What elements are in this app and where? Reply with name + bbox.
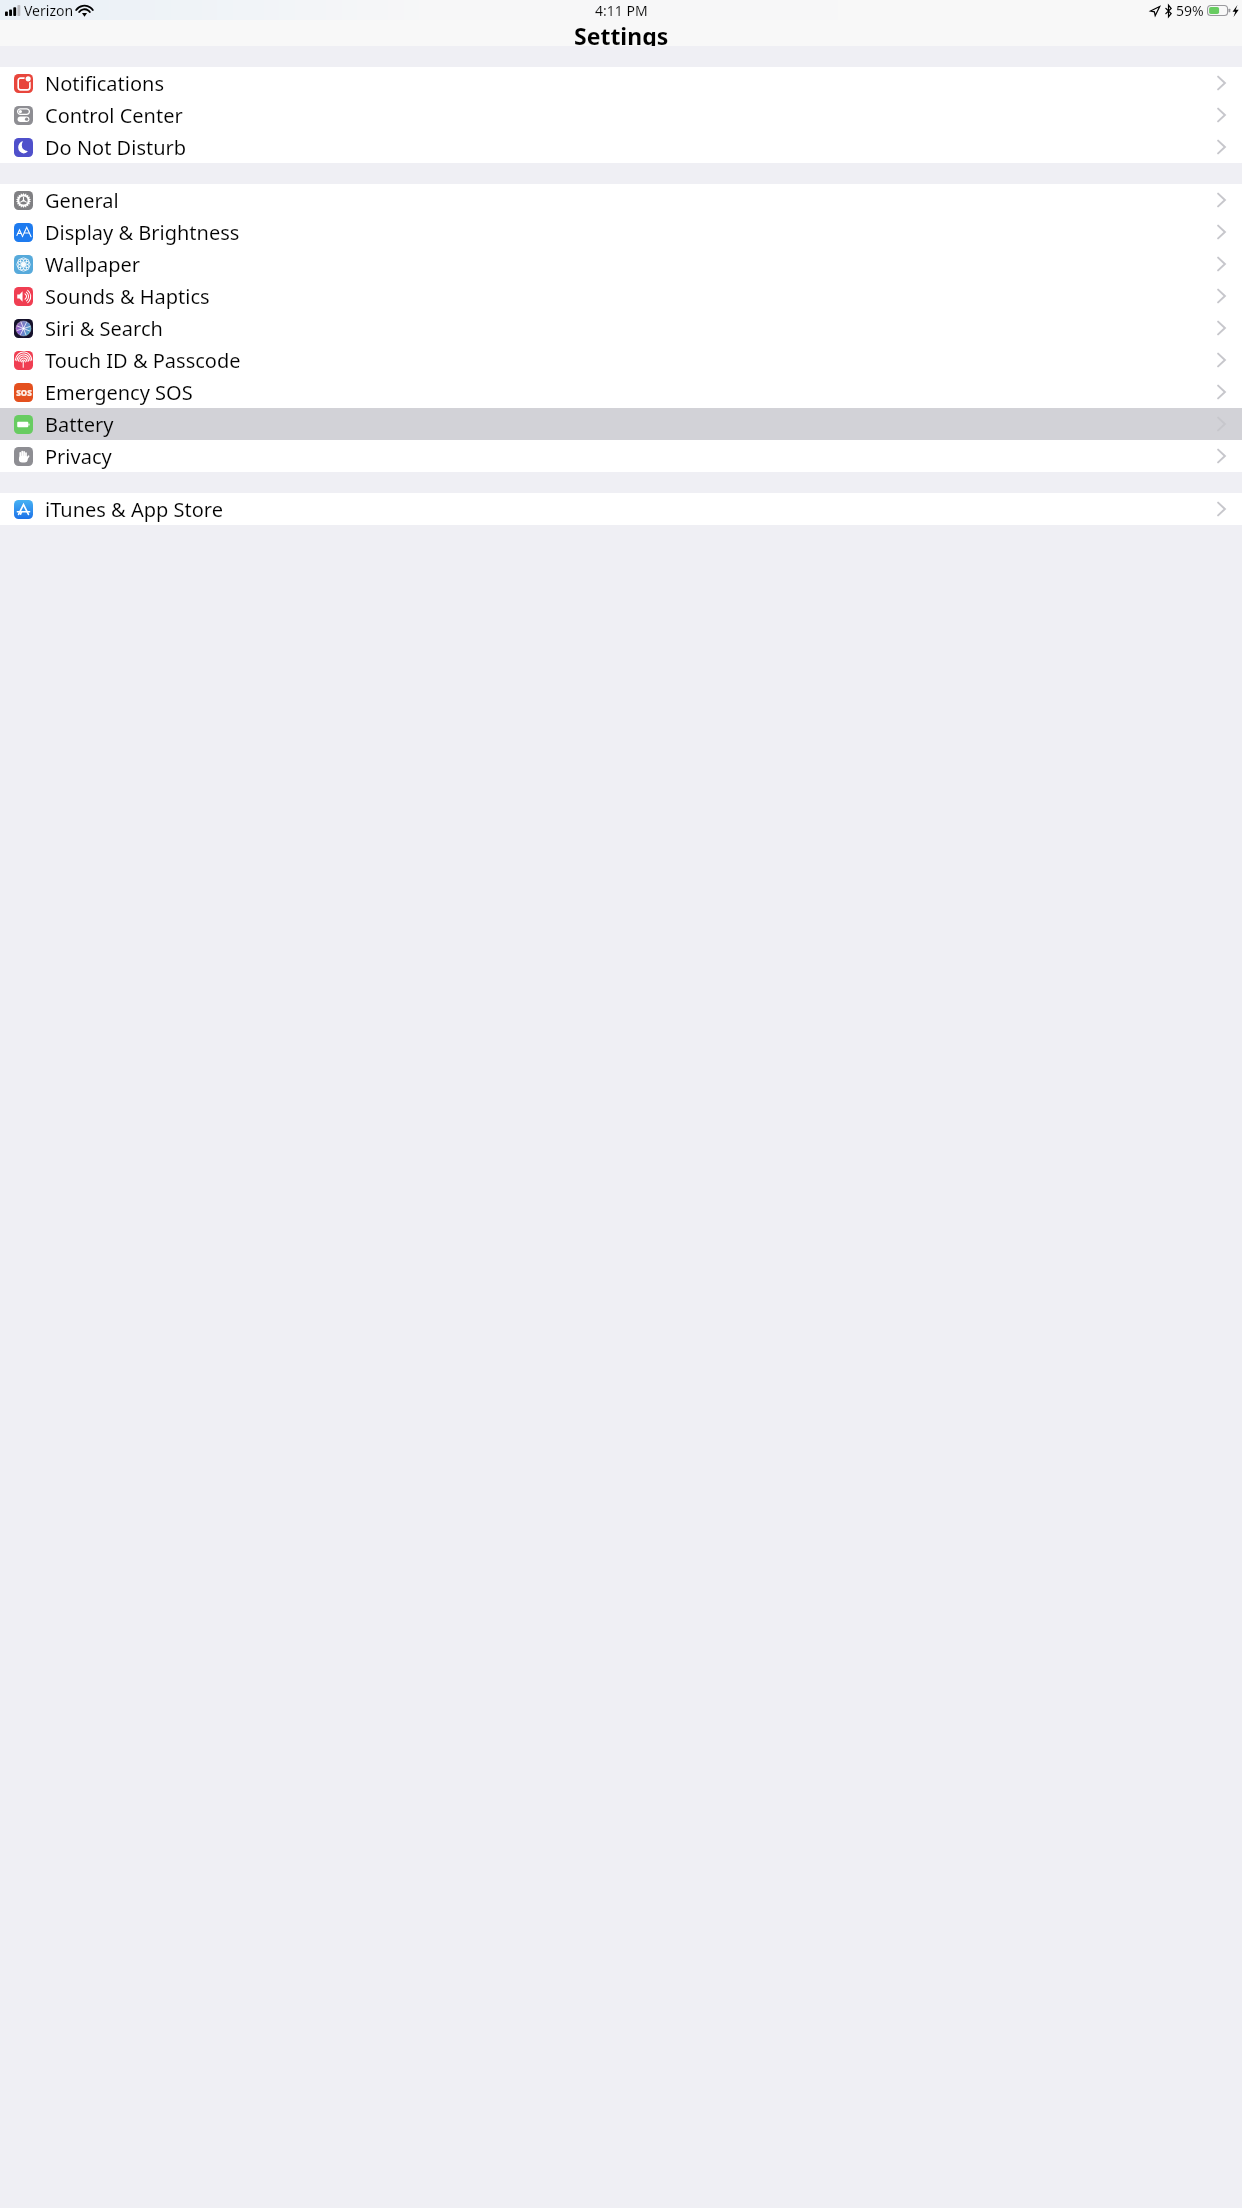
button[interactable]: Battery: [0, 408, 1242, 440]
staticText: Notifications: [45, 70, 164, 97]
button[interactable]: Do Not Disturb: [0, 131, 1242, 163]
button[interactable]: Wallpaper: [0, 248, 1242, 280]
staticText: Battery: [45, 411, 114, 438]
staticText: Display & Brightness: [45, 219, 240, 246]
other: Battery: [14, 415, 33, 434]
staticText: 4:11 PM: [595, 1, 648, 20]
other: Emergency SOS: [14, 383, 33, 402]
other: Do Not Disturb: [14, 138, 33, 157]
staticText: Privacy: [45, 443, 112, 470]
other: Siri and Search: [14, 319, 33, 338]
other: Sounds and Haptics: [14, 287, 33, 306]
staticText: Verizon: [24, 1, 74, 20]
staticText: Wallpaper: [45, 251, 141, 278]
other: Notifications: [14, 74, 33, 93]
other: Privacy: [14, 447, 33, 466]
button[interactable]: Display and Brightness: [0, 216, 1242, 248]
staticText: SOS: [16, 387, 32, 398]
other: Control Center: [14, 106, 33, 125]
button[interactable]: Siri and Search: [0, 312, 1242, 344]
staticText: Do Not Disturb: [45, 134, 187, 161]
staticText: Settings: [574, 20, 669, 46]
staticText: Control Center: [45, 102, 183, 129]
staticText: Siri & Search: [45, 315, 163, 342]
button[interactable]: Emergency SOS: [0, 376, 1242, 408]
staticText: 59%: [1176, 1, 1204, 20]
staticText: Sounds & Haptics: [45, 283, 210, 310]
other: Wallpaper: [14, 255, 33, 274]
staticText: iTunes & App Store: [45, 496, 223, 523]
other: Display and Brightness: [14, 223, 33, 242]
button[interactable]: Touch ID and Passcode: [0, 344, 1242, 376]
other: iTunes and App Store: [14, 500, 33, 519]
button[interactable]: General: [0, 184, 1242, 216]
staticText: General: [45, 187, 119, 214]
button[interactable]: Notifications: [0, 67, 1242, 99]
button[interactable]: Sounds and Haptics: [0, 280, 1242, 312]
staticText: Emergency SOS: [45, 379, 193, 406]
button[interactable]: iTunes and App Store: [0, 493, 1242, 525]
button[interactable]: Control Center: [0, 99, 1242, 131]
button[interactable]: Privacy: [0, 440, 1242, 472]
staticText: Touch ID & Passcode: [45, 347, 241, 374]
other: General: [14, 191, 33, 210]
other: Touch ID and Passcode: [14, 351, 33, 370]
